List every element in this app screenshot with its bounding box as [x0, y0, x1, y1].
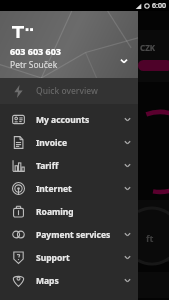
- staticText: Roaming: [36, 206, 74, 218]
- button[interactable]: Quick overview: [0, 78, 138, 104]
- staticText: Quick overview: [36, 85, 98, 97]
- staticText: Tariff: [36, 160, 59, 172]
- staticText: ft: [146, 232, 154, 244]
- staticText: CZK: [140, 42, 156, 53]
- button[interactable]: Internet: [0, 177, 138, 200]
- button[interactable]: Tariff: [0, 154, 138, 177]
- staticText: Payment services: [36, 229, 111, 241]
- button[interactable]: 603 603 603: [0, 11, 138, 78]
- button[interactable]: Maps: [0, 269, 138, 292]
- button[interactable]: Invoice: [0, 131, 138, 154]
- staticText: My accounts: [36, 114, 90, 126]
- staticText: Petr Souček: [10, 59, 58, 71]
- staticText: Invoice: [36, 137, 67, 149]
- button[interactable]: Payment services: [0, 223, 138, 246]
- staticText: 6:00: [152, 1, 166, 11]
- staticText: Internet: [36, 183, 72, 195]
- staticText: 603 603 603: [10, 45, 62, 57]
- staticText: Support: [36, 252, 70, 264]
- button[interactable]: Support: [0, 246, 138, 269]
- button[interactable]: Switch account: [117, 54, 131, 68]
- staticText: Maps: [36, 275, 59, 287]
- button[interactable]: My accounts: [0, 108, 138, 131]
- button[interactable]: Roaming: [0, 200, 138, 223]
